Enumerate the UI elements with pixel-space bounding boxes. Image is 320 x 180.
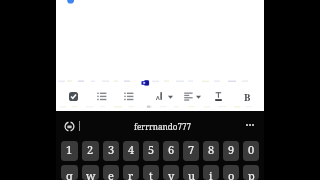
button[interactable]: Font size (156, 91, 165, 101)
staticText: 8 (208, 142, 215, 157)
button[interactable]: Numbered list (124, 92, 134, 101)
button[interactable]: r (123, 165, 139, 180)
button[interactable]: o (223, 165, 239, 180)
button[interactable]: 5 (143, 141, 159, 161)
staticText: y (168, 168, 175, 180)
button[interactable]: 8 (203, 141, 219, 161)
button[interactable]: ferrrnando777 (134, 121, 191, 132)
button[interactable]: 7 (183, 141, 199, 161)
staticText: 3 (108, 142, 115, 157)
button[interactable]: i (203, 165, 219, 180)
button[interactable]: Text colour (215, 91, 223, 101)
button[interactable]: B (242, 91, 253, 102)
button[interactable]: w (82, 165, 99, 180)
button[interactable]: u (183, 165, 199, 180)
staticText: p (248, 168, 255, 180)
staticText: 6 (168, 142, 175, 157)
button[interactable]: Bulleted list (97, 92, 107, 101)
button[interactable]: Checklist (69, 92, 78, 101)
staticText: e (108, 168, 114, 180)
staticText: 9 (228, 142, 235, 157)
button[interactable]: e (103, 165, 119, 180)
staticText: 0 (248, 142, 255, 157)
button[interactable]: p (243, 165, 259, 180)
staticText: 1 (66, 142, 73, 157)
staticText: q (66, 168, 73, 180)
button[interactable]: y (163, 165, 179, 180)
button[interactable]: 1 (61, 141, 78, 161)
staticText: u (188, 168, 195, 180)
button[interactable]: 2 (82, 141, 99, 161)
staticText: 2 (87, 142, 94, 157)
button[interactable]: 6 (163, 141, 179, 161)
staticText: r (128, 168, 134, 180)
button[interactable]: 4 (123, 141, 139, 161)
staticText: i (209, 168, 213, 180)
button[interactable]: t (143, 165, 159, 180)
staticText: o (228, 168, 235, 180)
staticText: B (244, 91, 251, 102)
button[interactable]: Alignment (184, 92, 193, 101)
button[interactable]: q (61, 165, 78, 180)
staticText: 7 (188, 142, 195, 157)
button[interactable]: Keyboard settings (64, 121, 75, 132)
staticText: w (86, 168, 96, 180)
staticText: 5 (148, 142, 155, 157)
button[interactable]: More options (246, 124, 254, 126)
staticText: 4 (128, 142, 135, 157)
staticText: t (149, 168, 153, 180)
button[interactable]: 9 (223, 141, 239, 161)
button[interactable]: 3 (103, 141, 119, 161)
staticText: ferrrnando777 (134, 121, 191, 132)
button[interactable]: 0 (243, 141, 259, 161)
